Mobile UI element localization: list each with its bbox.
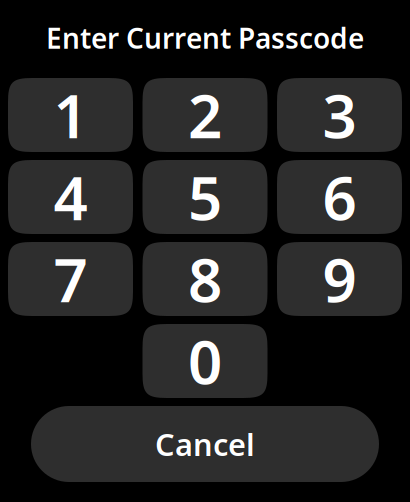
button[interactable]: 6 bbox=[277, 160, 402, 234]
button[interactable]: 4 bbox=[8, 160, 133, 234]
staticText: 2 bbox=[188, 75, 222, 155]
staticText: 0 bbox=[188, 321, 222, 401]
staticText: 8 bbox=[188, 239, 222, 319]
staticText: 5 bbox=[188, 157, 222, 237]
button[interactable]: 9 bbox=[277, 242, 402, 316]
button[interactable]: 7 bbox=[8, 242, 133, 316]
button[interactable]: 8 bbox=[142, 242, 267, 316]
button[interactable]: Cancel bbox=[31, 406, 379, 482]
staticText: Enter Current Passcode bbox=[46, 19, 364, 57]
staticText: 3 bbox=[322, 75, 356, 155]
button[interactable]: 5 bbox=[142, 160, 267, 234]
staticText: Cancel bbox=[155, 424, 255, 464]
staticText: 6 bbox=[322, 157, 356, 237]
button[interactable]: 3 bbox=[277, 78, 402, 152]
button[interactable]: 2 bbox=[142, 78, 267, 152]
staticText: 7 bbox=[53, 239, 87, 319]
staticText: 9 bbox=[322, 239, 356, 319]
button[interactable]: 0 bbox=[142, 324, 267, 398]
button[interactable]: 1 bbox=[8, 78, 133, 152]
staticText: 4 bbox=[53, 157, 87, 237]
staticText: 1 bbox=[53, 75, 87, 155]
